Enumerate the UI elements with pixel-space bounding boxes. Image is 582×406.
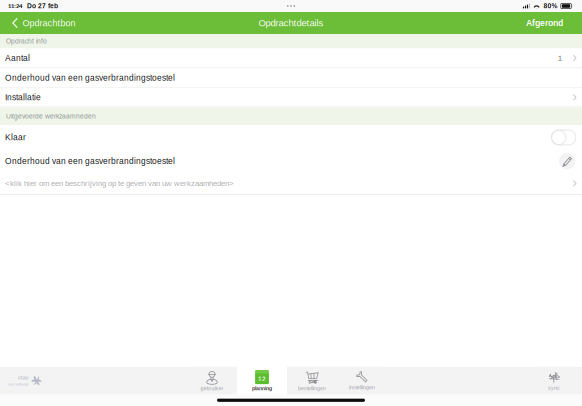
staticText: planning bbox=[252, 386, 272, 391]
button[interactable]: bestellingen bbox=[287, 367, 337, 395]
button[interactable]: Opdrachtbon bbox=[0, 12, 84, 34]
button[interactable]: gebruiker bbox=[187, 367, 237, 395]
button[interactable]: Onderhoud van een gasverbrandingstoestel bbox=[0, 68, 582, 88]
button[interactable]: Onderhoud van een gasverbrandingstoestel bbox=[0, 150, 582, 173]
staticText: bestellingen bbox=[298, 386, 326, 391]
staticText: Klaar bbox=[5, 133, 26, 142]
staticText: one software bbox=[8, 382, 29, 386]
staticText: 12 bbox=[258, 375, 266, 383]
staticText: gebruiker bbox=[200, 386, 223, 391]
button[interactable]: Aantal bbox=[0, 48, 582, 68]
staticText: Opdracht info bbox=[6, 37, 47, 45]
button[interactable]: <klik hier om een beschrijving op te gev… bbox=[0, 173, 582, 195]
staticText: Afgerond bbox=[526, 18, 563, 28]
staticText: Uitgevoerde werkzaamheden bbox=[6, 112, 96, 120]
button[interactable]: Installatie bbox=[0, 88, 582, 107]
staticText: <klik hier om een beschrijving op te gev… bbox=[5, 179, 234, 188]
staticText: Installatie bbox=[5, 93, 41, 102]
staticText: Opdrachtbon bbox=[23, 18, 76, 28]
staticText: 11:24 bbox=[8, 3, 22, 9]
button[interactable]: sync bbox=[532, 367, 576, 395]
staticText: Do 27 feb bbox=[27, 2, 58, 10]
button[interactable]: instellingen bbox=[337, 367, 387, 395]
button[interactable]: Klaar bbox=[0, 125, 582, 150]
staticText: ctac bbox=[18, 375, 29, 380]
staticText: 1 bbox=[558, 54, 562, 62]
staticText: Onderhoud van een gasverbrandingstoestel bbox=[5, 156, 175, 166]
staticText: Onderhoud van een gasverbrandingstoestel bbox=[5, 73, 175, 83]
staticText: Aantal bbox=[5, 53, 30, 63]
staticText: 80% bbox=[543, 2, 557, 10]
button[interactable]: 12 bbox=[237, 367, 287, 395]
staticText: sync bbox=[548, 385, 560, 391]
button[interactable]: Afgerond bbox=[516, 12, 582, 34]
staticText: instellingen bbox=[349, 385, 375, 390]
staticText: Opdrachtdetails bbox=[258, 18, 323, 28]
